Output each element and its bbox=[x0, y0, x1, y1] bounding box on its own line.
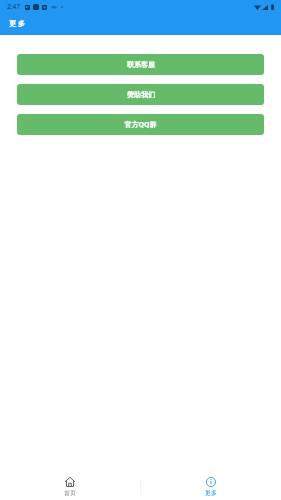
button[interactable]: 官方QQ群 bbox=[17, 114, 264, 135]
staticText: 赞助我们 bbox=[127, 90, 155, 99]
staticText: 更多 bbox=[9, 19, 28, 28]
staticText: 更多 bbox=[205, 489, 217, 497]
button[interactable]: 赞助我们 bbox=[17, 84, 264, 105]
staticText: 联系客服 bbox=[127, 60, 155, 69]
other: 更多 bbox=[206, 477, 216, 487]
other: 首页 bbox=[65, 477, 75, 487]
staticText: 官方QQ群 bbox=[124, 120, 157, 130]
staticText: 2:47 bbox=[7, 2, 20, 11]
staticText: 首页 bbox=[64, 489, 76, 497]
button[interactable]: 首页 bbox=[0, 470, 140, 500]
button[interactable]: 更多 bbox=[140, 470, 281, 500]
button[interactable]: 联系客服 bbox=[17, 54, 264, 75]
